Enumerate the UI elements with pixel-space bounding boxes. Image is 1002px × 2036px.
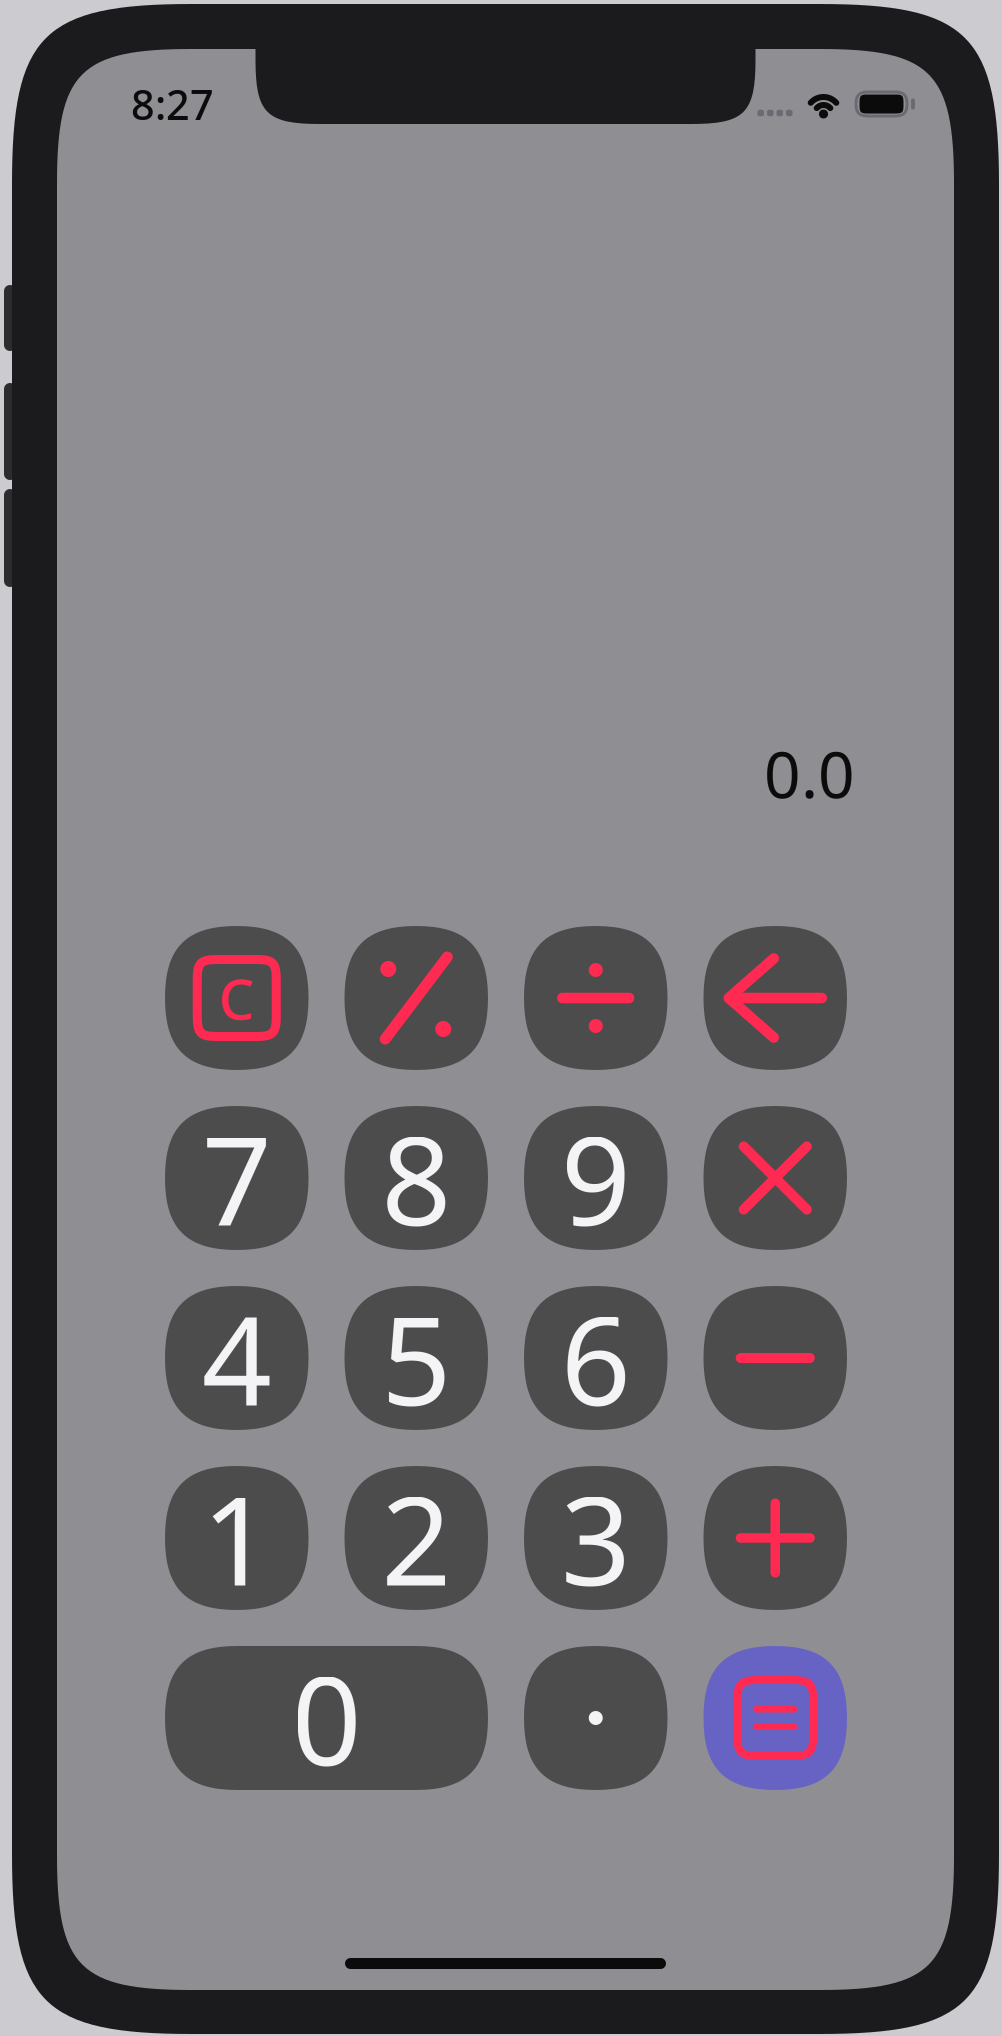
button[interactable]: 5 xyxy=(344,1286,488,1430)
button[interactable]: 6 xyxy=(524,1286,667,1430)
staticText: 8 xyxy=(381,1097,451,1259)
button[interactable]: Decimal point xyxy=(524,1646,667,1790)
staticText: 4 xyxy=(202,1277,272,1439)
staticText: 9 xyxy=(561,1097,631,1259)
button[interactable]: 9 xyxy=(524,1106,667,1250)
button[interactable]: Minus xyxy=(703,1286,847,1430)
button[interactable]: 2 xyxy=(344,1466,488,1610)
button[interactable]: Divide xyxy=(524,926,667,1070)
button[interactable]: 3 xyxy=(524,1466,667,1610)
button[interactable]: 4 xyxy=(165,1286,308,1430)
staticText: 6 xyxy=(561,1277,631,1439)
staticText: 7 xyxy=(202,1097,272,1259)
staticText: 0 xyxy=(291,1637,361,1799)
button[interactable]: Equals xyxy=(703,1646,847,1790)
staticText: 5 xyxy=(381,1277,451,1439)
button[interactable]: Multiply xyxy=(703,1106,847,1250)
button[interactable]: Backspace xyxy=(703,926,847,1070)
button[interactable]: 7 xyxy=(165,1106,308,1250)
button[interactable]: 8 xyxy=(344,1106,488,1250)
button[interactable]: 0 xyxy=(165,1646,488,1790)
button[interactable]: Percent xyxy=(344,926,488,1070)
button[interactable]: Clear xyxy=(165,926,308,1070)
staticText: 3 xyxy=(561,1457,631,1619)
button[interactable]: 1 xyxy=(165,1466,308,1610)
staticText: 1 xyxy=(202,1457,272,1619)
staticText: 8:27 xyxy=(131,77,214,131)
staticText: 2 xyxy=(381,1457,451,1619)
button[interactable]: Plus xyxy=(703,1466,847,1610)
staticText: C xyxy=(219,961,255,1035)
staticText: 0.0 xyxy=(764,731,855,816)
